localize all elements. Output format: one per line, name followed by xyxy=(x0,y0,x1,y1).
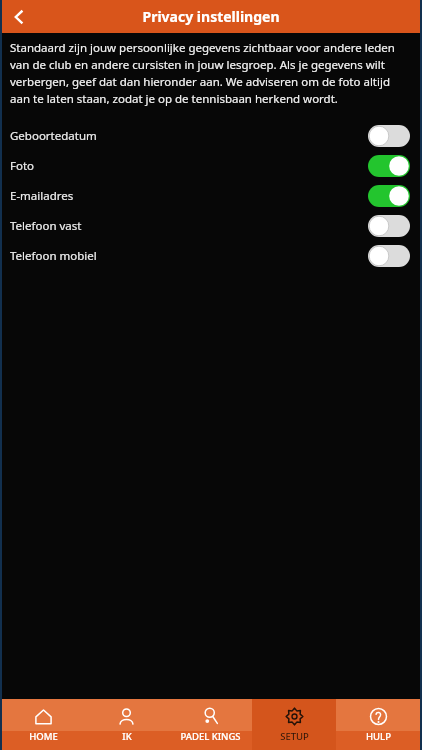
button[interactable]: Back xyxy=(2,0,36,33)
staticText: Geboortedatum xyxy=(10,128,368,144)
staticText: IK xyxy=(122,730,132,743)
staticText: Foto xyxy=(10,158,368,174)
button[interactable]: HULP xyxy=(336,699,420,750)
staticText: PADEL KINGS xyxy=(180,730,241,743)
staticText: Telefoon vast xyxy=(10,218,368,234)
button[interactable]: E-mailadres xyxy=(2,181,420,211)
button[interactable]: Foto xyxy=(2,151,420,181)
staticText: Telefoon mobiel xyxy=(10,248,368,264)
staticText: SETUP xyxy=(280,730,309,743)
button[interactable]: SETUP xyxy=(252,699,336,750)
button[interactable]: Telefoon vast xyxy=(2,211,420,241)
button[interactable]: HOME xyxy=(2,699,85,750)
button[interactable]: PADEL KINGS xyxy=(168,699,252,750)
button[interactable]: Geboortedatum xyxy=(2,121,420,151)
staticText: E-mailadres xyxy=(10,188,368,204)
staticText: Privacy instellingen xyxy=(142,7,280,26)
staticText: HULP xyxy=(366,730,391,743)
button[interactable]: IK xyxy=(85,699,168,750)
staticText: HOME xyxy=(29,730,58,743)
button[interactable]: Telefoon mobiel xyxy=(2,241,420,271)
staticText: Standaard zijn jouw persoonlijke gegeven… xyxy=(10,40,406,107)
